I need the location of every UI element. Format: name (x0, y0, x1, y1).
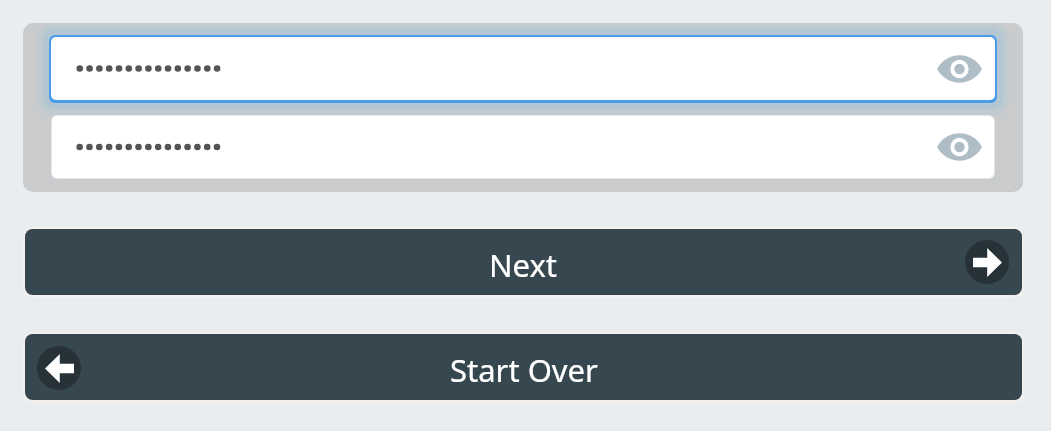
button[interactable]: Show password (931, 126, 988, 168)
button[interactable]: Start Over (37, 346, 81, 390)
button[interactable]: Next (965, 240, 1009, 284)
button[interactable]: Show password (51, 115, 995, 179)
button[interactable]: Show password (49, 35, 997, 103)
button[interactable]: Start Over (25, 334, 1022, 400)
button[interactable]: Show password (931, 48, 988, 90)
button[interactable]: Next (25, 229, 1022, 295)
staticText: Next (489, 244, 558, 286)
staticText: Start Over (450, 349, 598, 391)
